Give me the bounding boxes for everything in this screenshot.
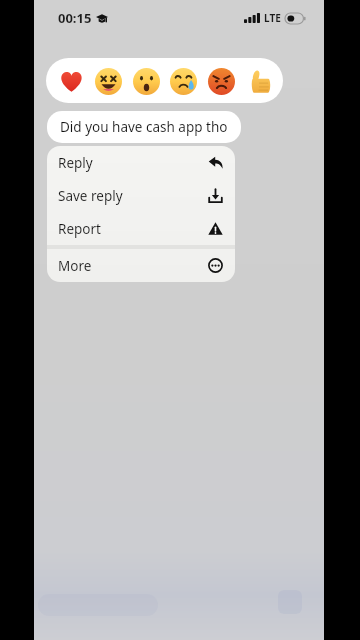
staticText: Did you have cash app tho xyxy=(60,118,228,136)
staticText: Reply xyxy=(58,154,208,172)
button[interactable]: More xyxy=(47,249,235,282)
button[interactable]: Reply xyxy=(47,146,235,179)
staticText: Save reply xyxy=(58,187,208,205)
button[interactable]: Report xyxy=(47,212,235,245)
button[interactable]: Did you have cash app tho xyxy=(47,111,241,143)
button[interactable]: Save reply xyxy=(47,179,235,212)
staticText: Report xyxy=(58,220,208,238)
button[interactable]: Sad reaction xyxy=(167,65,199,97)
button[interactable]: Surprised reaction xyxy=(130,65,162,97)
button[interactable]: Laughing reaction xyxy=(92,65,124,97)
button[interactable]: Heart reaction xyxy=(55,65,87,97)
button[interactable]: Angry reaction xyxy=(205,65,237,97)
button[interactable]: Thumbs up reaction xyxy=(242,65,274,97)
staticText: LTE xyxy=(264,11,281,25)
staticText: More xyxy=(58,257,208,275)
staticText: 00:15 xyxy=(58,9,92,27)
